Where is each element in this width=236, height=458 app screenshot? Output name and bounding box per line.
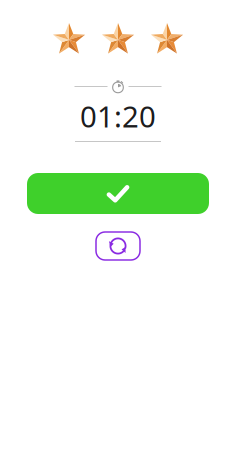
staticText: 01:20 — [80, 96, 156, 135]
button[interactable]: Confirm — [27, 173, 209, 214]
button[interactable]: Restart — [96, 232, 140, 260]
